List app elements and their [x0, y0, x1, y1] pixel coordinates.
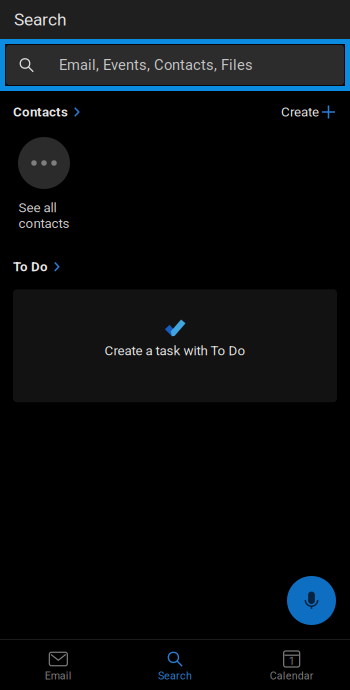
staticText: Search [14, 9, 67, 30]
staticText: Contacts [13, 104, 68, 120]
button[interactable]: Contacts [13, 98, 79, 126]
staticText: Email [45, 669, 72, 682]
staticText: 1 [289, 655, 295, 667]
button[interactable]: 1 [233, 639, 350, 690]
button[interactable]: To Do [13, 248, 59, 275]
button[interactable]: Voice search [287, 576, 336, 625]
button[interactable]: See all contacts [0, 137, 88, 231]
button[interactable]: Create a task with To Do [13, 289, 337, 402]
staticText: Calendar [270, 669, 314, 682]
button[interactable]: Email [0, 639, 117, 690]
staticText: Email, Events, Contacts, Files [59, 56, 253, 74]
staticText: To Do [13, 259, 48, 274]
button[interactable]: Search [117, 639, 233, 690]
staticText: Create [281, 104, 319, 120]
staticText: Search [158, 669, 192, 682]
staticText: See all contacts [18, 200, 69, 231]
button[interactable]: Create [281, 98, 335, 126]
staticText: Create a task with To Do [104, 343, 245, 358]
